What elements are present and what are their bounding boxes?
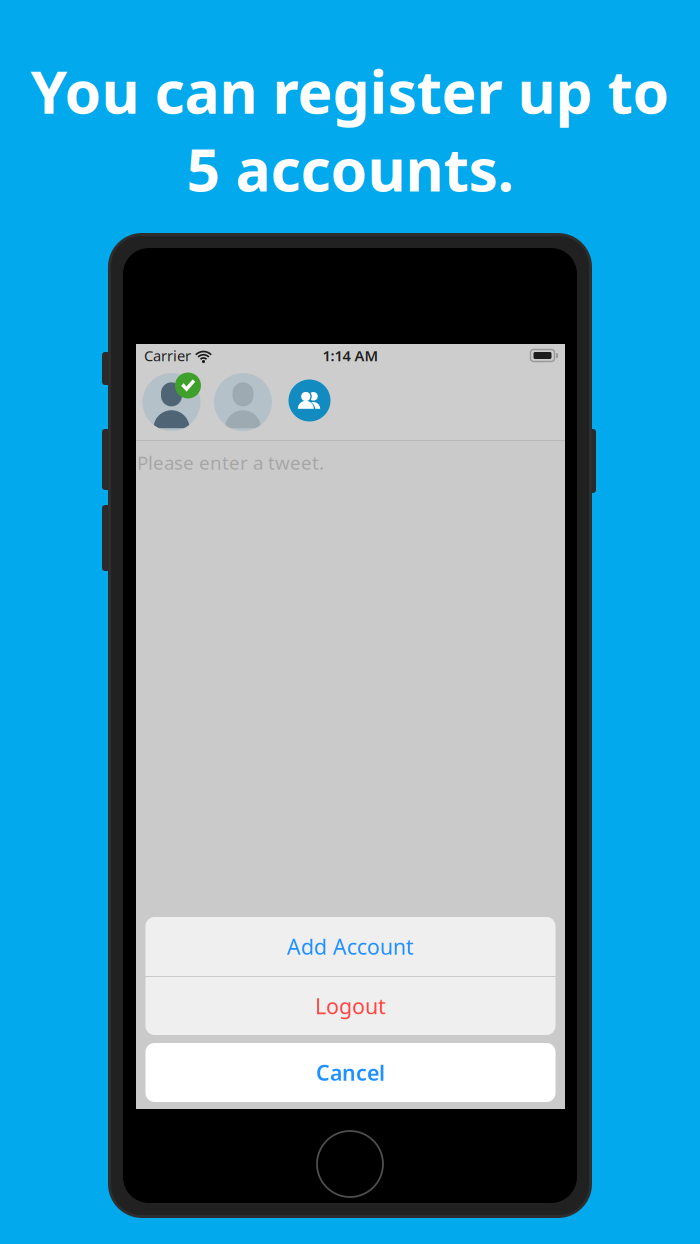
staticText: Carrier: [144, 346, 191, 365]
staticText: Cancel: [316, 1058, 385, 1087]
staticText: 5 accounts.: [186, 130, 513, 208]
button[interactable]: Cancel: [145, 1043, 555, 1102]
button[interactable]: Logout: [145, 977, 555, 1035]
button[interactable]: Account 1, selected: [142, 373, 200, 431]
staticText: 1:14 AM: [322, 346, 378, 365]
staticText: Add Account: [287, 932, 414, 961]
button[interactable]: Account 2: [214, 373, 272, 431]
staticText: Please enter a tweet.: [137, 450, 324, 475]
staticText: Logout: [315, 992, 386, 1020]
staticText: You can register up to: [30, 52, 669, 130]
button[interactable]: Manage accounts: [288, 379, 330, 421]
button[interactable]: Add Account: [145, 917, 555, 976]
